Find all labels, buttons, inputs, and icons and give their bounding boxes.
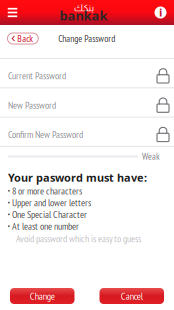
staticText: Weak (142, 150, 160, 162)
staticText: At least one number (12, 220, 79, 233)
button[interactable]: Cancel (99, 288, 164, 304)
staticText: Confirm New Password (8, 128, 83, 141)
staticText: Back (17, 32, 33, 45)
staticText: Change Password (58, 32, 115, 45)
staticText: Avoid password which is easy to guess (16, 232, 141, 245)
staticText: 8 or more characters (12, 184, 82, 197)
staticText: Your pasword must have: (8, 170, 147, 185)
staticText: New Password (8, 99, 56, 111)
staticText: Change (30, 289, 55, 302)
staticText: Cancel (121, 289, 143, 302)
staticText: bankak (59, 7, 107, 24)
staticText: Current Password (8, 69, 66, 82)
button[interactable]: Menu (0, 0, 25, 25)
button[interactable]: Back (7, 33, 38, 44)
staticText: بنكك (73, 3, 93, 13)
button[interactable]: Change (10, 288, 74, 304)
staticText: i (159, 4, 162, 20)
staticText: One Special Character (12, 208, 87, 221)
staticText: Upper and lower letters (12, 196, 91, 209)
button[interactable]: Information (147, 0, 174, 25)
